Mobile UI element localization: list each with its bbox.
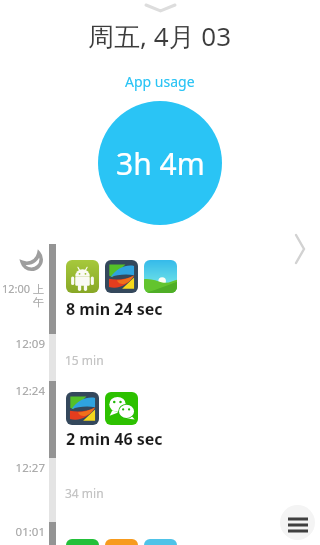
button[interactable]	[66, 392, 99, 425]
staticText: App usage	[125, 72, 195, 91]
staticText: 2 min 46 sec	[66, 428, 163, 450]
staticText: 3h 4m	[116, 143, 205, 184]
staticText: 12:09	[0, 336, 45, 352]
staticText: 12:00 上午	[0, 281, 44, 310]
staticText: 01:01	[0, 524, 45, 540]
button[interactable]	[144, 539, 177, 545]
staticText: 8 min 24 sec	[66, 298, 163, 320]
button[interactable]	[144, 260, 177, 293]
staticText: 12:27	[0, 460, 45, 476]
button[interactable]: Collapse	[142, 0, 178, 16]
staticText: 34 min	[65, 485, 104, 501]
staticText: 15 min	[65, 352, 104, 368]
button[interactable]	[105, 260, 138, 293]
button[interactable]	[105, 539, 138, 545]
button[interactable]	[66, 260, 99, 293]
button[interactable]: 3h 4m	[98, 101, 222, 225]
button[interactable]: Menu	[280, 505, 315, 540]
staticText: 12:24	[0, 383, 45, 399]
button[interactable]	[105, 392, 138, 425]
staticText: 周五, 4月 03	[88, 18, 232, 54]
button[interactable]: Next	[286, 232, 314, 266]
button[interactable]	[66, 539, 99, 545]
